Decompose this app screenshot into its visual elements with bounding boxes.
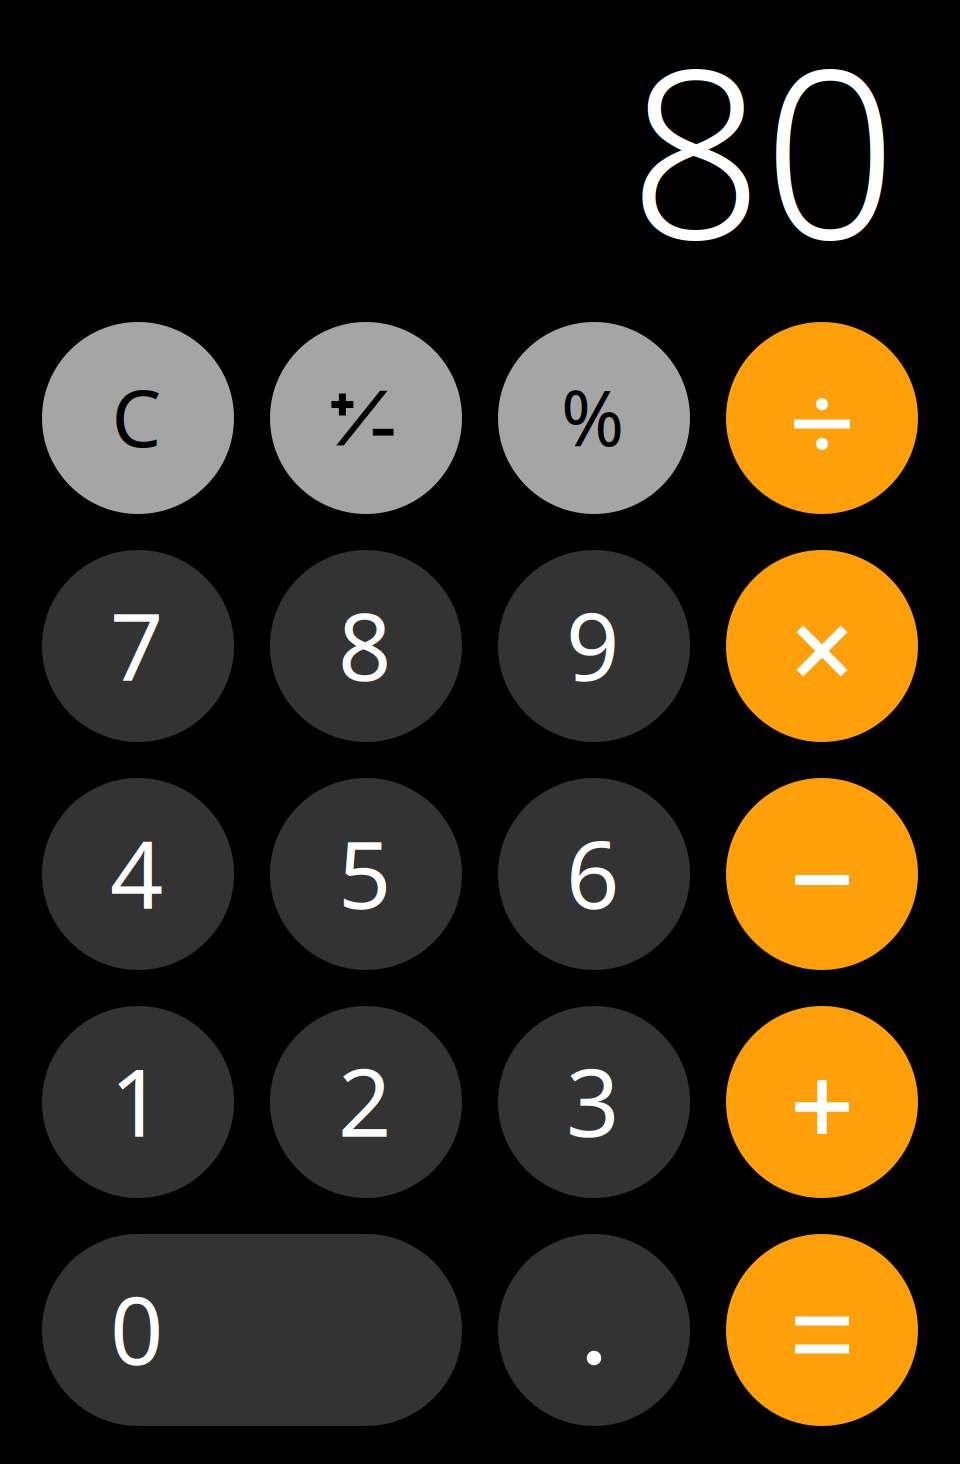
button[interactable]: 9 — [498, 550, 690, 742]
staticText: % — [561, 366, 624, 467]
button[interactable]: C — [42, 322, 234, 514]
button[interactable]: 6 — [498, 778, 690, 970]
button[interactable]: 3 — [498, 1006, 690, 1198]
button[interactable]: % — [498, 322, 690, 514]
staticText: 9 — [566, 582, 619, 706]
button[interactable]: Plus — [726, 1006, 918, 1198]
staticText: 8 — [338, 582, 391, 706]
staticText: 1 — [110, 1038, 163, 1162]
button[interactable]: 1 — [42, 1006, 234, 1198]
staticText: 6 — [566, 810, 619, 934]
staticText: 2 — [338, 1038, 391, 1162]
staticText: C — [111, 364, 161, 469]
staticText: 3 — [566, 1038, 619, 1162]
button[interactable]: 4 — [42, 778, 234, 970]
button[interactable]: Equals — [726, 1234, 918, 1426]
staticText: 5 — [338, 810, 391, 934]
button[interactable]: Decimal point — [498, 1234, 690, 1426]
button[interactable]: 7 — [42, 550, 234, 742]
staticText: 7 — [110, 582, 163, 706]
staticText: 80 — [629, 0, 897, 304]
button[interactable]: Plus minus — [270, 322, 462, 514]
button[interactable]: Minus — [726, 778, 918, 970]
button[interactable]: Divide — [726, 322, 918, 514]
button[interactable]: 0 — [42, 1234, 462, 1426]
button[interactable]: 8 — [270, 550, 462, 742]
button[interactable]: Multiply — [726, 550, 918, 742]
staticText: 0 — [110, 1266, 163, 1390]
staticText: 4 — [110, 810, 163, 934]
button[interactable]: 2 — [270, 1006, 462, 1198]
button[interactable]: 5 — [270, 778, 462, 970]
